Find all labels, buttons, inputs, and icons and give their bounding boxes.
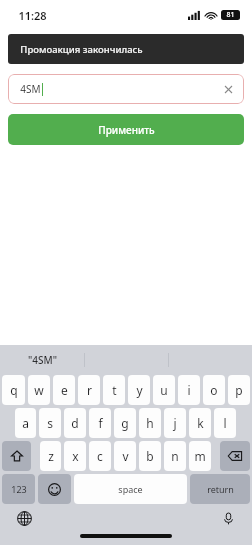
staticText: return bbox=[207, 483, 234, 495]
button[interactable]: f bbox=[89, 408, 111, 438]
button[interactable]: y bbox=[128, 375, 150, 405]
staticText: space bbox=[118, 483, 143, 495]
staticText: s bbox=[47, 415, 53, 431]
button[interactable]: r bbox=[78, 375, 100, 405]
button[interactable]: Применить bbox=[8, 114, 244, 145]
staticText: v bbox=[122, 448, 129, 464]
staticText: d bbox=[71, 415, 79, 431]
staticText: i bbox=[187, 382, 191, 398]
button[interactable]: Emoji bbox=[38, 474, 71, 504]
staticText: j bbox=[173, 415, 177, 431]
staticText: r bbox=[87, 382, 92, 398]
staticText: c bbox=[97, 448, 103, 464]
staticText: t bbox=[112, 382, 117, 398]
staticText: 81 bbox=[226, 10, 235, 20]
button[interactable]: Clear text bbox=[218, 79, 238, 99]
staticText: x bbox=[72, 448, 79, 464]
button[interactable]: 123 bbox=[2, 474, 35, 504]
button[interactable]: i bbox=[178, 375, 200, 405]
staticText: m bbox=[194, 448, 206, 464]
staticText: z bbox=[48, 448, 54, 464]
button[interactable]: q bbox=[2, 375, 25, 405]
staticText: 4SM bbox=[20, 82, 41, 96]
button[interactable]: x bbox=[64, 441, 86, 471]
button[interactable]: u bbox=[153, 375, 175, 405]
button[interactable]: Shift bbox=[2, 441, 31, 471]
button[interactable]: Промоакция закончилась bbox=[8, 34, 244, 64]
staticText: a bbox=[22, 415, 29, 431]
staticText: q bbox=[10, 382, 18, 398]
button[interactable]: m bbox=[189, 441, 211, 471]
staticText: h bbox=[146, 415, 154, 431]
button[interactable]: return bbox=[190, 474, 250, 504]
staticText: 11:28 bbox=[18, 8, 47, 23]
button[interactable]: l bbox=[214, 408, 236, 438]
button[interactable]: e bbox=[53, 375, 75, 405]
staticText: k bbox=[197, 415, 204, 431]
button[interactable]: p bbox=[228, 375, 250, 405]
button[interactable]: space bbox=[74, 474, 187, 504]
staticText: n bbox=[171, 448, 179, 464]
button[interactable]: 4SM bbox=[8, 74, 244, 104]
button[interactable]: Dictation bbox=[218, 508, 238, 528]
button[interactable]: b bbox=[139, 441, 161, 471]
staticText: p bbox=[235, 382, 243, 398]
staticText: w bbox=[34, 382, 44, 398]
button[interactable]: d bbox=[64, 408, 86, 438]
staticText: Применить bbox=[98, 123, 155, 137]
staticText: b bbox=[146, 448, 154, 464]
button[interactable]: h bbox=[139, 408, 161, 438]
staticText: Промоакция закончилась bbox=[20, 43, 143, 56]
button[interactable]: g bbox=[114, 408, 136, 438]
button[interactable]: z bbox=[40, 441, 61, 471]
staticText: f bbox=[98, 415, 103, 431]
button[interactable]: j bbox=[164, 408, 186, 438]
button[interactable]: t bbox=[103, 375, 125, 405]
button[interactable]: w bbox=[28, 375, 50, 405]
button[interactable]: o bbox=[203, 375, 225, 405]
button[interactable]: Change keyboard language bbox=[14, 508, 34, 528]
staticText: e bbox=[61, 382, 68, 398]
button[interactable]: k bbox=[189, 408, 211, 438]
staticText: y bbox=[136, 382, 143, 398]
button[interactable]: Backspace bbox=[220, 441, 250, 471]
staticText: o bbox=[210, 382, 218, 398]
button[interactable]: n bbox=[164, 441, 186, 471]
button[interactable]: c bbox=[89, 441, 111, 471]
button[interactable]: "4SM" bbox=[0, 345, 84, 375]
staticText: l bbox=[223, 415, 227, 431]
button[interactable]: a bbox=[15, 408, 36, 438]
button[interactable]: s bbox=[39, 408, 61, 438]
staticText: u bbox=[160, 382, 168, 398]
button[interactable]: v bbox=[114, 441, 136, 471]
staticText: "4SM" bbox=[28, 353, 57, 367]
staticText: g bbox=[121, 415, 129, 431]
staticText: 123 bbox=[11, 483, 27, 495]
